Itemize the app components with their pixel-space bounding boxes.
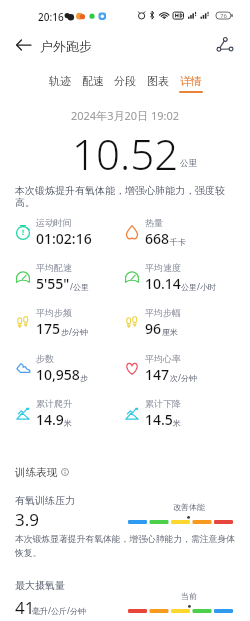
button[interactable]: Back xyxy=(8,32,38,58)
staticText: 有氧训练压力 xyxy=(15,494,75,507)
staticText: 户外跑步 xyxy=(40,38,92,54)
staticText: 步 xyxy=(80,373,88,383)
staticText: 平均心率 xyxy=(145,353,181,364)
staticText: 厘米 xyxy=(162,327,178,337)
staticText: 千卡 xyxy=(170,237,186,247)
staticText: 平均步频 xyxy=(36,307,72,318)
staticText: 41 xyxy=(15,596,35,619)
staticText: 轨迹 xyxy=(49,74,71,88)
staticText: 本次锻炼提升有氧体能，增强心肺能力，强度较高。 xyxy=(15,184,227,209)
button[interactable]: 平均步幅 xyxy=(123,302,233,342)
button[interactable]: 运动时间 xyxy=(14,212,124,252)
staticText: 公里/小时 xyxy=(181,281,216,292)
staticText: 米 xyxy=(173,418,181,428)
staticText: 公里 xyxy=(180,158,197,169)
button[interactable]: 步数 xyxy=(14,348,124,388)
staticText: 当前 xyxy=(181,591,197,601)
staticText: 20:16 xyxy=(38,10,64,24)
button[interactable]: 热量 xyxy=(123,212,233,252)
button[interactable]: 图表 xyxy=(142,74,174,96)
staticText: 01:02:16 xyxy=(36,229,92,248)
staticText: 毫升/公斤/分钟 xyxy=(32,605,86,616)
staticText: 累计爬升 xyxy=(36,398,72,409)
staticText: 147 xyxy=(145,365,170,384)
button[interactable]: 累计爬升 xyxy=(14,393,124,433)
staticText: /公里 xyxy=(70,281,89,292)
staticText: 平均步幅 xyxy=(145,307,181,318)
button[interactable]: 平均步频 xyxy=(14,302,124,342)
staticText: 分段 xyxy=(114,74,136,88)
staticText: 本次锻炼显著提升有氧体能，增强心肺能力，需注意身体恢复。 xyxy=(15,534,237,559)
staticText: 改善体能 xyxy=(173,502,205,512)
staticText: 2024年3月20日 19:02 xyxy=(0,108,250,123)
staticText: 运动时间 xyxy=(36,217,72,228)
staticText: 步/分钟 xyxy=(61,326,88,337)
staticText: 96 xyxy=(145,319,162,338)
button[interactable]: 配速 xyxy=(77,74,109,96)
staticText: 最大摄氧量 xyxy=(15,579,65,592)
button[interactable]: 平均速度 xyxy=(123,257,233,297)
button[interactable]: 平均配速 xyxy=(14,257,124,297)
staticText: 14.9 xyxy=(36,410,64,429)
staticText: 5'55" xyxy=(36,274,70,293)
staticText: 配速 xyxy=(82,74,104,88)
button[interactable]: 详情 xyxy=(175,74,207,96)
staticText: 10,958 xyxy=(36,365,80,384)
button[interactable]: 轨迹 xyxy=(44,74,76,96)
staticText: 10.52 xyxy=(72,125,179,182)
staticText: 3.9 xyxy=(15,508,40,531)
staticText: 平均速度 xyxy=(145,262,181,273)
staticText: 次/分钟 xyxy=(170,372,197,383)
staticText: 热量 xyxy=(145,217,163,228)
staticText: 米 xyxy=(64,418,72,428)
staticText: 14.5 xyxy=(145,410,173,429)
staticText: 详情 xyxy=(180,74,202,88)
button[interactable]: Share xyxy=(212,31,238,57)
staticText: 训练表现 xyxy=(15,466,57,479)
button[interactable]: 分段 xyxy=(109,74,141,96)
staticText: 10.14 xyxy=(145,274,181,293)
staticText: 平均配速 xyxy=(36,262,72,273)
staticText: 图表 xyxy=(147,74,169,88)
button[interactable]: 累计下降 xyxy=(123,393,233,433)
staticText: 668 xyxy=(145,229,170,248)
button[interactable]: 平均心率 xyxy=(123,348,233,388)
staticText: 76 xyxy=(220,12,227,20)
staticText: 累计下降 xyxy=(145,398,181,409)
staticText: 175 xyxy=(36,319,61,338)
staticText: 步数 xyxy=(36,353,54,364)
